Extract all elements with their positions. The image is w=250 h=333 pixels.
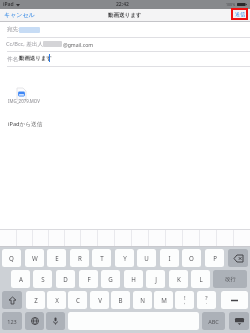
- staticText: H: [131, 275, 136, 283]
- button[interactable]: [199, 229, 216, 247]
- button[interactable]: [97, 229, 114, 247]
- button[interactable]: E: [47, 249, 66, 267]
- staticText: iPadから送信: [8, 120, 43, 128]
- staticText: 動画送ります: [108, 12, 142, 19]
- button[interactable]: K: [169, 270, 188, 288]
- staticText: Z: [34, 296, 38, 304]
- button[interactable]: 123: [2, 312, 22, 330]
- button[interactable]: V: [90, 291, 109, 309]
- staticText: 動画送ります: [19, 55, 52, 62]
- staticText: ,: [184, 299, 186, 305]
- button[interactable]: [64, 229, 80, 247]
- button[interactable]: S: [33, 270, 52, 288]
- staticText: IMG_2079.MOV: [8, 98, 40, 104]
- staticText: !: [184, 294, 186, 302]
- staticText: O: [189, 254, 194, 262]
- button[interactable]: Hide keyboard: [229, 312, 249, 330]
- staticText: X: [55, 296, 59, 304]
- button[interactable]: Q: [2, 249, 21, 267]
- staticText: .: [206, 299, 208, 305]
- button[interactable]: [233, 229, 250, 247]
- staticText: iPad: [3, 1, 14, 8]
- button[interactable]: [165, 229, 182, 247]
- staticText: Cc/Bcc, 差出人:: [6, 40, 45, 48]
- button[interactable]: [80, 229, 97, 247]
- staticText: 改行: [225, 276, 236, 283]
- staticText: W: [32, 254, 38, 262]
- staticText: ABC: [208, 318, 219, 325]
- staticText: Y: [123, 254, 127, 262]
- staticText: A: [19, 275, 23, 283]
- button[interactable]: Shift: [2, 291, 22, 309]
- button[interactable]: [48, 229, 64, 247]
- button[interactable]: Long vowel mark: [221, 291, 248, 309]
- staticText: 100%: [226, 2, 236, 7]
- staticText: S: [41, 275, 45, 283]
- staticText: R: [78, 254, 82, 262]
- staticText: 123: [7, 318, 17, 325]
- button[interactable]: P: [205, 249, 224, 267]
- staticText: J: [155, 275, 157, 283]
- staticText: C: [76, 296, 80, 304]
- button[interactable]: Next keyboard: [25, 312, 44, 330]
- button[interactable]: Dictate: [46, 312, 65, 330]
- staticText: K: [177, 275, 181, 283]
- staticText: E: [55, 254, 59, 262]
- button[interactable]: [114, 229, 131, 247]
- button[interactable]: 送信: [231, 8, 248, 20]
- button[interactable]: U: [137, 249, 156, 267]
- button[interactable]: W: [25, 249, 44, 267]
- staticText: 送信: [235, 11, 245, 17]
- button[interactable]: Z: [26, 291, 45, 309]
- staticText: V: [98, 296, 102, 304]
- button[interactable]: Y: [115, 249, 134, 267]
- staticText: 22:42: [116, 1, 129, 8]
- staticText: I: [168, 254, 171, 262]
- button[interactable]: 改行: [213, 270, 247, 288]
- button[interactable]: F: [79, 270, 98, 288]
- button[interactable]: C: [68, 291, 87, 309]
- button[interactable]: ABC: [202, 312, 225, 330]
- staticText: U: [144, 254, 149, 262]
- button[interactable]: [131, 229, 148, 247]
- button[interactable]: [182, 229, 199, 247]
- button[interactable]: H: [124, 270, 143, 288]
- staticText: B: [118, 296, 123, 304]
- button[interactable]: Delete: [228, 249, 248, 267]
- staticText: D: [63, 275, 68, 283]
- staticText: P: [213, 254, 217, 262]
- button[interactable]: R: [70, 249, 89, 267]
- button[interactable]: A: [11, 270, 30, 288]
- button[interactable]: キャンセル: [0, 10, 38, 20]
- staticText: 宛先:: [7, 25, 20, 33]
- button[interactable]: [148, 229, 165, 247]
- button[interactable]: T: [92, 249, 111, 267]
- staticText: @gmail.com: [63, 41, 94, 48]
- staticText: T: [100, 254, 104, 262]
- button[interactable]: J: [146, 270, 165, 288]
- staticText: F: [87, 275, 91, 283]
- button[interactable]: [0, 229, 16, 247]
- button[interactable]: L: [191, 270, 210, 288]
- button[interactable]: M: [154, 291, 173, 309]
- button[interactable]: B: [111, 291, 130, 309]
- staticText: G: [108, 275, 113, 283]
- staticText: ?: [205, 294, 208, 302]
- staticText: M: [161, 296, 167, 304]
- staticText: L: [199, 275, 203, 283]
- button[interactable]: D: [56, 270, 75, 288]
- staticText: Q: [9, 254, 14, 262]
- button[interactable]: [16, 229, 32, 247]
- staticText: 件名:: [7, 55, 20, 63]
- button[interactable]: G: [101, 270, 120, 288]
- button[interactable]: X: [47, 291, 66, 309]
- button[interactable]: N: [133, 291, 152, 309]
- button[interactable]: !: [175, 291, 194, 309]
- button[interactable]: I: [160, 249, 179, 267]
- button[interactable]: [32, 229, 48, 247]
- button[interactable]: [216, 229, 233, 247]
- staticText: N: [140, 296, 145, 304]
- button[interactable]: O: [182, 249, 201, 267]
- button[interactable]: ?: [197, 291, 216, 309]
